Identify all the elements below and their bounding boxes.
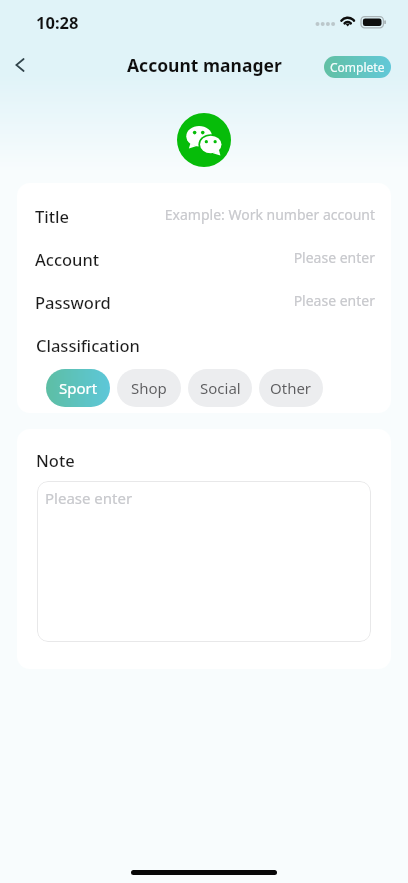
staticText: Classification	[36, 334, 140, 356]
staticText: Please enter	[121, 291, 375, 310]
button[interactable]: Sport	[46, 369, 110, 407]
staticText: Password	[35, 291, 111, 313]
staticText: Other	[270, 378, 312, 398]
staticText: Account manager	[127, 53, 282, 77]
button[interactable]: Complete	[324, 56, 391, 78]
button[interactable]: Social	[188, 369, 252, 407]
staticText: Please enter	[45, 488, 133, 508]
button[interactable]: Back	[1, 48, 39, 86]
staticText: Sport	[59, 378, 98, 398]
button[interactable]: Title	[17, 193, 391, 236]
staticText: Title	[35, 205, 69, 227]
staticText: Shop	[131, 378, 167, 398]
button[interactable]: Shop	[117, 369, 181, 407]
staticText: Please enter	[110, 248, 375, 267]
staticText: Social	[200, 378, 241, 398]
button[interactable]: Please enter	[37, 481, 371, 642]
button[interactable]: Password	[17, 279, 391, 322]
staticText: Account	[35, 248, 100, 270]
button[interactable]: Account	[17, 236, 391, 279]
button[interactable]: Other	[259, 369, 323, 407]
staticText: Example: Work number account	[79, 205, 375, 224]
staticText: Complete	[330, 59, 385, 75]
staticText: 10:28	[36, 11, 79, 33]
staticText: Note	[36, 449, 75, 471]
